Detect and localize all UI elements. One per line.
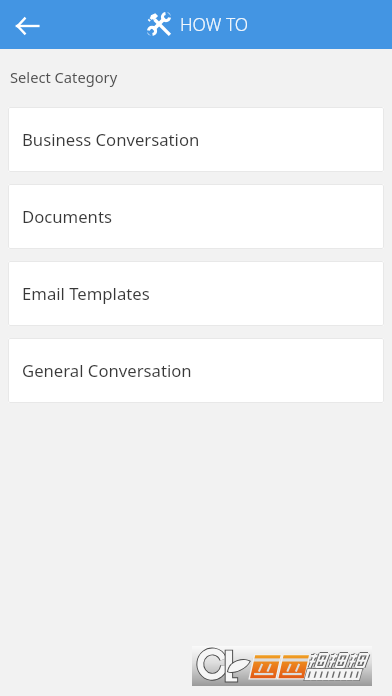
- button[interactable]: General Conversation: [8, 338, 384, 403]
- staticText: General Conversation: [22, 359, 192, 382]
- staticText: Email Templates: [22, 282, 150, 305]
- staticText: Documents: [22, 205, 112, 228]
- staticText: Select Category: [10, 67, 118, 87]
- staticText: HOW TO: [180, 12, 249, 36]
- button[interactable]: Business Conversation: [8, 107, 384, 172]
- button[interactable]: Back: [5, 4, 49, 48]
- button[interactable]: Email Templates: [8, 261, 384, 326]
- button[interactable]: Documents: [8, 184, 384, 249]
- staticText: Business Conversation: [22, 128, 200, 151]
